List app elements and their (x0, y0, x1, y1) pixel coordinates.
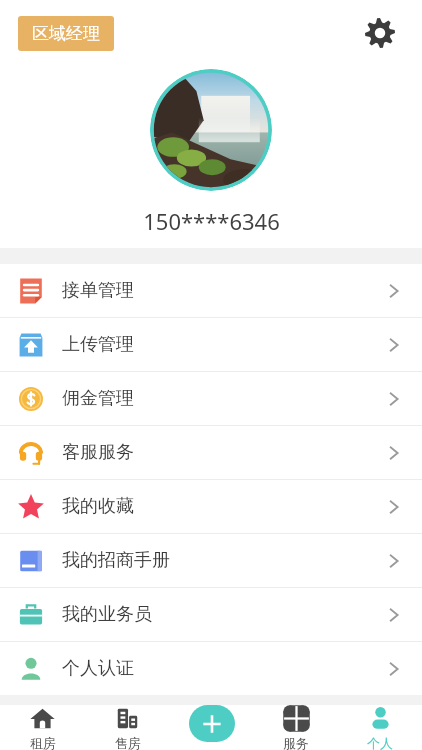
button[interactable]: Settings (358, 11, 402, 55)
button[interactable]: 客服服务 (0, 426, 422, 479)
staticText: 售房 (115, 735, 141, 750)
staticText: 接单管理 (62, 279, 134, 302)
button[interactable]: 租房 (0, 705, 85, 750)
button[interactable]: 服务 (254, 705, 338, 750)
staticText: 客服服务 (62, 441, 134, 464)
button[interactable]: 上传管理 (0, 318, 422, 371)
staticText: 150****6346 (143, 206, 280, 236)
button[interactable]: 我的招商手册 (0, 534, 422, 587)
staticText: 个人 (367, 735, 393, 750)
button[interactable]: Profile photo (150, 69, 272, 191)
button[interactable]: Add (170, 705, 254, 750)
staticText: 服务 (283, 735, 309, 750)
button[interactable]: 我的业务员 (0, 588, 422, 641)
button[interactable]: 接单管理 (0, 264, 422, 317)
staticText: 我的收藏 (62, 495, 134, 518)
button[interactable]: 我的收藏 (0, 480, 422, 533)
staticText: 区域经理 (32, 23, 100, 44)
button[interactable]: 区域经理 (18, 16, 114, 51)
staticText: 个人认证 (62, 657, 134, 680)
staticText: 佣金管理 (62, 387, 134, 410)
button[interactable]: 佣金管理 (0, 372, 422, 425)
staticText: 我的招商手册 (62, 549, 170, 572)
button[interactable]: 售房 (85, 705, 170, 750)
staticText: 租房 (30, 735, 56, 750)
button[interactable]: 个人认证 (0, 642, 422, 695)
staticText: 我的业务员 (62, 603, 152, 626)
button[interactable]: 个人 (338, 705, 422, 750)
staticText: 上传管理 (62, 333, 134, 356)
